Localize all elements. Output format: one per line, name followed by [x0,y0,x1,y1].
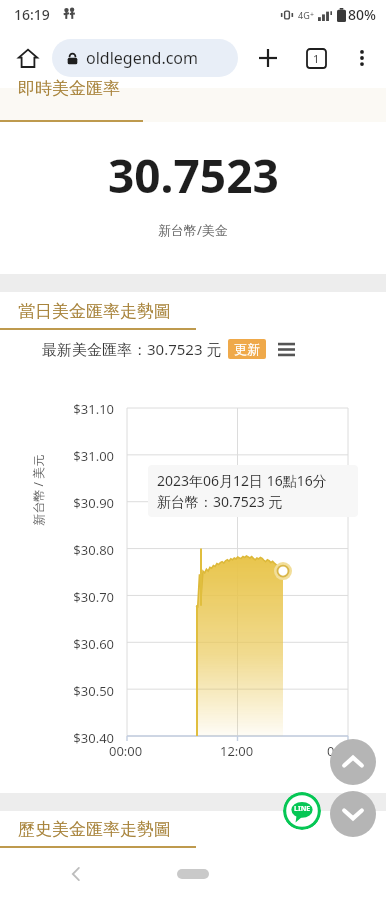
button[interactable]: Home [8,38,48,78]
staticText: 新台幣/美金 [158,221,228,239]
staticText: 00:00 [109,742,143,760]
staticText: $30.40 [73,729,114,745]
button[interactable]: oldlegend.com [52,39,238,77]
staticText: 12:00 [220,742,254,760]
button[interactable]: Scroll to bottom [330,791,376,837]
button[interactable]: More options [342,38,382,78]
staticText: 00:00 [327,742,361,760]
button[interactable]: Tabs [296,38,336,78]
button[interactable]: New tab [248,38,288,78]
staticText: 80% [348,5,376,24]
staticText: 歷史美金匯率走勢圖 [18,819,171,840]
staticText: 新台幣 / 美元 [29,454,45,525]
staticText: $31.00 [73,447,114,465]
button[interactable]: 更新 [228,339,266,359]
staticText: LINE [294,804,311,814]
staticText: $31.10 [73,400,114,418]
staticText: $30.60 [73,635,114,653]
button[interactable]: Home [177,869,209,879]
staticText: $30.90 [73,494,114,512]
staticText: 即時美金匯率 [18,78,120,99]
button[interactable]: Scroll to top [330,739,376,785]
staticText: 最新美金匯率：30.7523 元 [42,339,222,359]
button[interactable]: Back [56,854,96,894]
staticText: 2023年06月12日 16點16分 [157,471,327,490]
staticText: $30.50 [73,682,114,700]
button[interactable]: Chart menu [275,338,297,360]
staticText: 30.7523 [108,144,279,207]
button[interactable]: Share to LINE [283,792,321,830]
staticText: $30.70 [73,588,114,606]
staticText: 1 [313,51,320,66]
staticText: + [310,10,315,20]
staticText: 新台幣：30.7523 元 [157,492,283,511]
staticText: oldlegend.com [86,47,199,69]
staticText: 4G [298,9,310,21]
staticText: 16:19 [14,5,50,24]
staticText: $30.80 [73,541,114,559]
staticText: 當日美金匯率走勢圖 [18,301,171,322]
staticText: 更新 [234,341,260,357]
